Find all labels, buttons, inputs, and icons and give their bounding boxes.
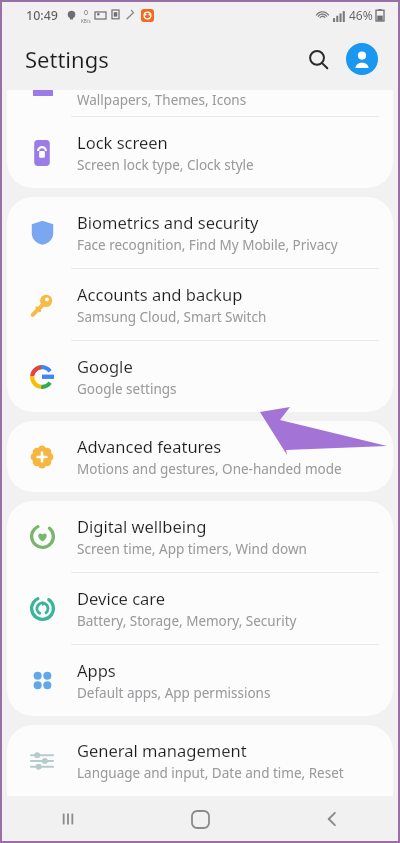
button[interactable]: Google [7, 341, 393, 412]
staticText: Device care [77, 587, 166, 609]
staticText: Battery, Storage, Memory, Security [77, 612, 297, 630]
button[interactable]: Home [134, 797, 266, 841]
staticText: Screen time, App timers, Wind down [77, 540, 307, 558]
staticText: 10:49 [26, 7, 59, 24]
staticText: KB/s [81, 18, 91, 24]
staticText: Language and input, Date and time, Reset [77, 764, 344, 782]
staticText: General management [77, 739, 247, 761]
staticText: Default apps, App permissions [77, 684, 271, 702]
button[interactable]: Accounts and backup [7, 269, 393, 340]
staticText: 46% [349, 7, 373, 23]
staticText: Apps [77, 659, 116, 681]
staticText: Google [77, 355, 133, 377]
button[interactable]: Account [346, 43, 378, 75]
button[interactable]: Apps [7, 645, 393, 716]
staticText: Wallpapers, Themes, Icons [77, 91, 247, 109]
button[interactable]: Search [301, 42, 335, 76]
button[interactable]: General management [7, 725, 393, 796]
staticText: Advanced features [77, 435, 222, 457]
staticText: Settings [25, 44, 109, 74]
staticText: Biometrics and security [77, 211, 259, 233]
staticText: Digital wellbeing [77, 515, 207, 537]
button[interactable]: Digital wellbeing [7, 501, 393, 572]
button[interactable]: Device care [7, 573, 393, 644]
button[interactable]: Lock screen [7, 117, 393, 188]
staticText: Lock screen [77, 131, 168, 153]
staticText: Accounts and backup [77, 283, 243, 305]
staticText: Motions and gestures, One-handed mode [77, 460, 342, 478]
staticText: Google settings [77, 380, 177, 398]
staticText: Samsung Cloud, Smart Switch [77, 308, 267, 326]
button[interactable]: Back [266, 797, 398, 841]
button[interactable]: Advanced features [7, 421, 393, 492]
button[interactable]: Biometrics and security [7, 197, 393, 268]
button[interactable]: Recents [2, 797, 134, 841]
staticText: Face recognition, Find My Mobile, Privac… [77, 236, 338, 254]
staticText: Screen lock type, Clock style [77, 156, 254, 174]
staticText: 0 [84, 8, 89, 18]
button[interactable]: Wallpapers, Themes, Icons [7, 90, 393, 116]
